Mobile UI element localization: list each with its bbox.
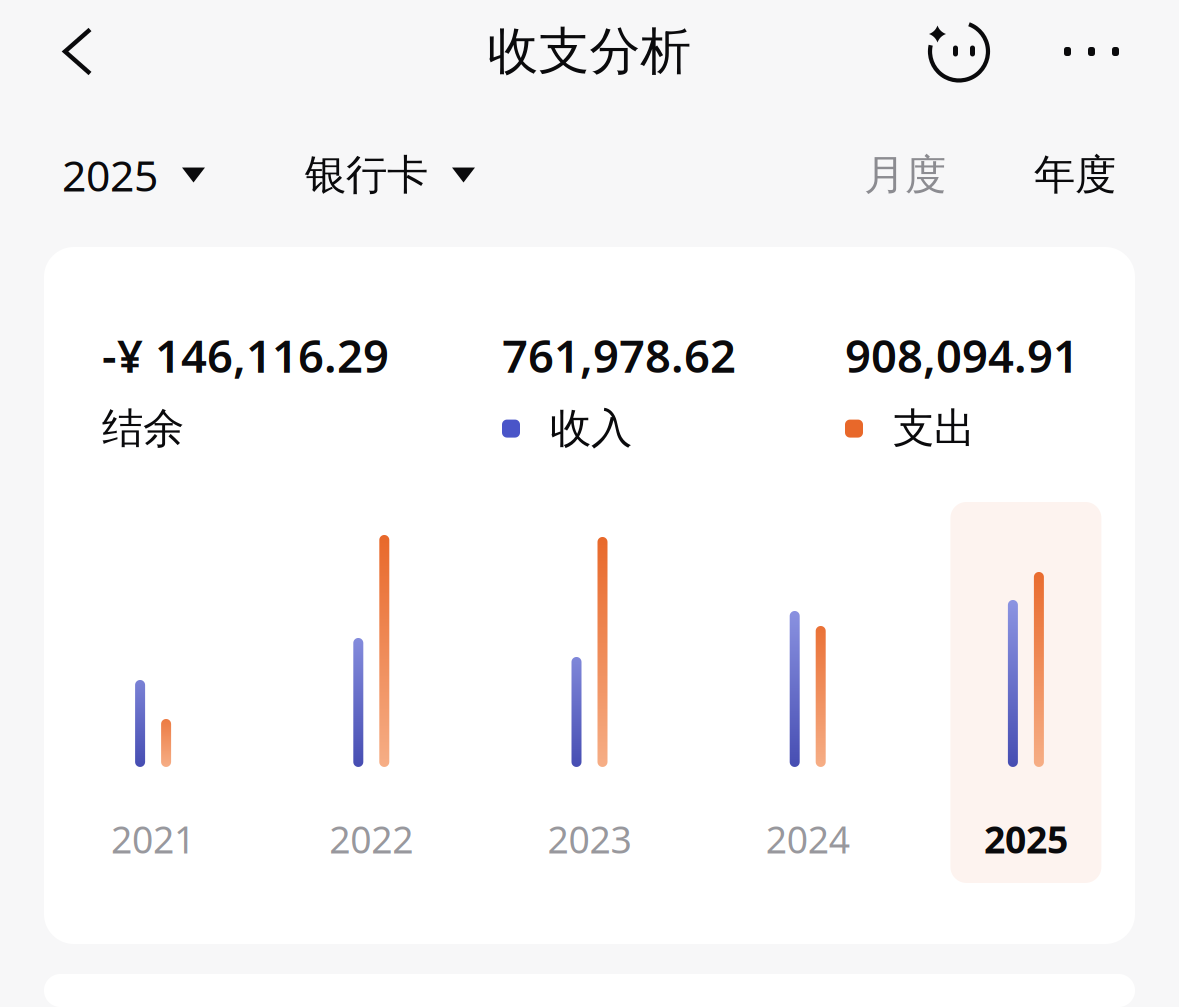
button[interactable]: 2023 xyxy=(480,476,699,905)
button[interactable]: AI assistant xyxy=(900,12,1032,90)
button[interactable]: 2025 xyxy=(917,476,1135,905)
staticText: 2025 xyxy=(984,814,1068,864)
staticText: 银行卡 xyxy=(305,150,428,200)
button[interactable]: 2024 xyxy=(699,476,917,905)
staticText: 2021 xyxy=(111,814,195,864)
button[interactable]: 2022 xyxy=(262,476,480,905)
button[interactable]: 2025 xyxy=(0,135,205,215)
button[interactable]: 2021 xyxy=(44,476,262,905)
staticText: 2022 xyxy=(329,814,413,864)
staticText: 结余 xyxy=(102,403,184,454)
button[interactable]: 月度 xyxy=(858,138,946,212)
button[interactable]: More options xyxy=(1032,21,1179,82)
staticText: 支出 xyxy=(893,403,975,454)
staticText: 收入 xyxy=(550,403,632,454)
staticText: 761,978.62 xyxy=(502,325,736,385)
staticText: 908,094.91 xyxy=(845,325,1079,385)
button[interactable]: 年度 xyxy=(946,138,1179,212)
button[interactable]: Back xyxy=(0,18,124,84)
staticText: 2024 xyxy=(766,814,850,864)
button[interactable]: 银行卡 xyxy=(205,138,475,212)
staticText: -¥ 146,116.29 xyxy=(102,325,389,385)
staticText: 2025 xyxy=(62,147,158,203)
staticText: 收支分析 xyxy=(487,20,691,83)
staticText: 2023 xyxy=(547,814,631,864)
staticText: 月度 xyxy=(864,150,946,200)
staticText: 年度 xyxy=(1034,150,1116,200)
